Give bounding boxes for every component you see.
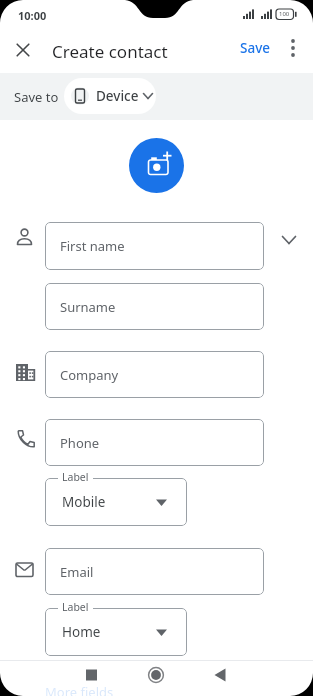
button[interactable] — [130, 660, 182, 696]
button[interactable]: Home — [45, 608, 187, 656]
staticText: Label — [62, 600, 89, 614]
button[interactable]: Mobile — [45, 478, 187, 526]
staticText: 10:00 — [18, 8, 47, 23]
staticText: Save to — [14, 88, 59, 106]
button[interactable]: First name — [45, 222, 264, 270]
staticText: Home — [62, 623, 101, 641]
staticText: Device — [96, 87, 139, 105]
staticText: Email — [60, 563, 94, 581]
button[interactable]: Company — [45, 351, 264, 398]
staticText: 100 — [279, 10, 290, 18]
button[interactable] — [194, 660, 246, 696]
button[interactable] — [129, 138, 184, 193]
staticText: More fields — [45, 683, 114, 696]
staticText: Label — [62, 470, 89, 484]
button[interactable] — [283, 38, 303, 58]
button[interactable]: Surname — [45, 283, 264, 330]
staticText: Company — [60, 366, 119, 384]
staticText: Surname — [60, 298, 116, 316]
staticText: First name — [60, 237, 125, 255]
button[interactable] — [277, 228, 301, 252]
button[interactable]: Device — [64, 78, 156, 114]
button[interactable]: Save — [234, 36, 276, 60]
button[interactable] — [10, 37, 36, 63]
button[interactable]: Phone — [45, 419, 264, 466]
staticText: Phone — [60, 434, 100, 452]
button[interactable]: Email — [45, 548, 264, 595]
staticText: Create contact — [52, 40, 168, 63]
button[interactable] — [66, 660, 118, 696]
staticText: Save — [240, 39, 271, 57]
staticText: Mobile — [62, 493, 106, 511]
